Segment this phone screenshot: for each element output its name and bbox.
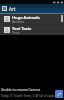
button[interactable]: Up xyxy=(2,6,7,11)
button[interactable]: Test Tests xyxy=(0,25,64,35)
staticText: Animals xyxy=(12,20,24,24)
staticText: Test Tests xyxy=(12,26,32,31)
staticText: Tests xyxy=(12,31,20,35)
staticText: Art xyxy=(9,6,16,12)
button[interactable]: Reply xyxy=(55,90,63,98)
staticText: Today 17:14 with Tomo, 2:48 full of capa… xyxy=(1,94,58,98)
staticText: Huge Animals xyxy=(12,15,40,20)
staticText: Unable to resume Camera xyxy=(1,88,41,92)
button[interactable]: Huge Animals xyxy=(0,14,64,24)
